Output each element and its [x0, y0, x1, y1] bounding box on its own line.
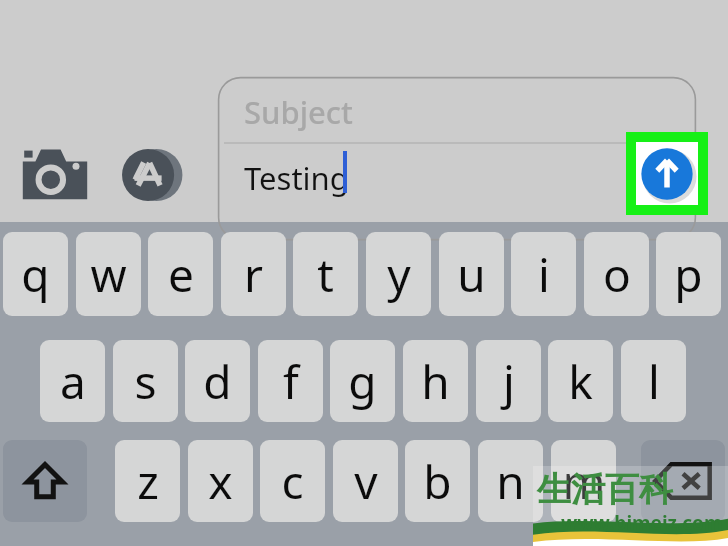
staticText: 百 [605, 468, 639, 511]
staticText: j [503, 350, 515, 413]
button[interactable]: l [621, 340, 686, 422]
button[interactable]: h [403, 340, 468, 422]
button[interactable]: p [656, 232, 721, 316]
staticText: k [568, 350, 593, 413]
button[interactable]: Shift [3, 440, 87, 522]
button[interactable]: x [188, 440, 253, 522]
staticText: l [648, 350, 660, 413]
staticText: e [168, 243, 194, 306]
button[interactable]: y [366, 232, 431, 316]
button[interactable]: o [584, 232, 649, 316]
staticText: www.bimeiz.com [561, 510, 723, 536]
button[interactable]: e [148, 232, 213, 316]
staticText: a [60, 350, 86, 413]
staticText: r [244, 243, 263, 306]
staticText: b [423, 450, 452, 513]
staticText: i [538, 243, 550, 306]
staticText: u [457, 243, 486, 306]
staticText: x [208, 450, 233, 513]
staticText: h [421, 350, 450, 413]
staticText: g [348, 350, 377, 413]
button[interactable]: j [476, 340, 541, 422]
button[interactable]: n [478, 440, 543, 522]
button[interactable]: s [113, 340, 178, 422]
button[interactable]: v [333, 440, 398, 522]
button[interactable]: Subject [218, 77, 696, 209]
button[interactable]: k [548, 340, 613, 422]
staticText: t [317, 243, 334, 306]
button[interactable]: Send [626, 132, 708, 215]
button[interactable]: d [185, 340, 250, 422]
staticText: c [281, 450, 304, 513]
staticText: p [674, 243, 703, 306]
button[interactable]: f [258, 340, 323, 422]
staticText: f [283, 350, 299, 413]
staticText: Testing [244, 157, 349, 199]
staticText: z [137, 450, 159, 513]
staticText: w [90, 243, 127, 306]
button[interactable]: t [293, 232, 358, 316]
staticText: s [134, 350, 157, 413]
staticText: q [21, 243, 50, 306]
staticText: 科 [639, 468, 673, 511]
staticText: v [354, 450, 378, 513]
button[interactable]: g [330, 340, 395, 422]
button[interactable]: m [551, 440, 616, 522]
button[interactable]: Camera [20, 146, 90, 204]
button[interactable]: u [439, 232, 504, 316]
staticText: Subject [244, 91, 353, 133]
button[interactable]: q [3, 232, 68, 316]
button[interactable]: z [115, 440, 180, 522]
staticText: n [496, 450, 525, 513]
staticText: o [603, 243, 631, 306]
staticText: 活 [571, 468, 605, 511]
button[interactable]: w [76, 232, 141, 316]
staticText: d [203, 350, 232, 413]
button[interactable]: Backspace [641, 440, 725, 522]
staticText: y [387, 243, 411, 306]
button[interactable]: r [221, 232, 286, 316]
staticText: 生 [537, 468, 571, 511]
button[interactable]: c [260, 440, 325, 522]
button[interactable]: b [405, 440, 470, 522]
button[interactable]: i [511, 232, 576, 316]
staticText: m [562, 450, 606, 513]
button[interactable]: App Store [118, 144, 182, 206]
button[interactable]: a [40, 340, 105, 422]
